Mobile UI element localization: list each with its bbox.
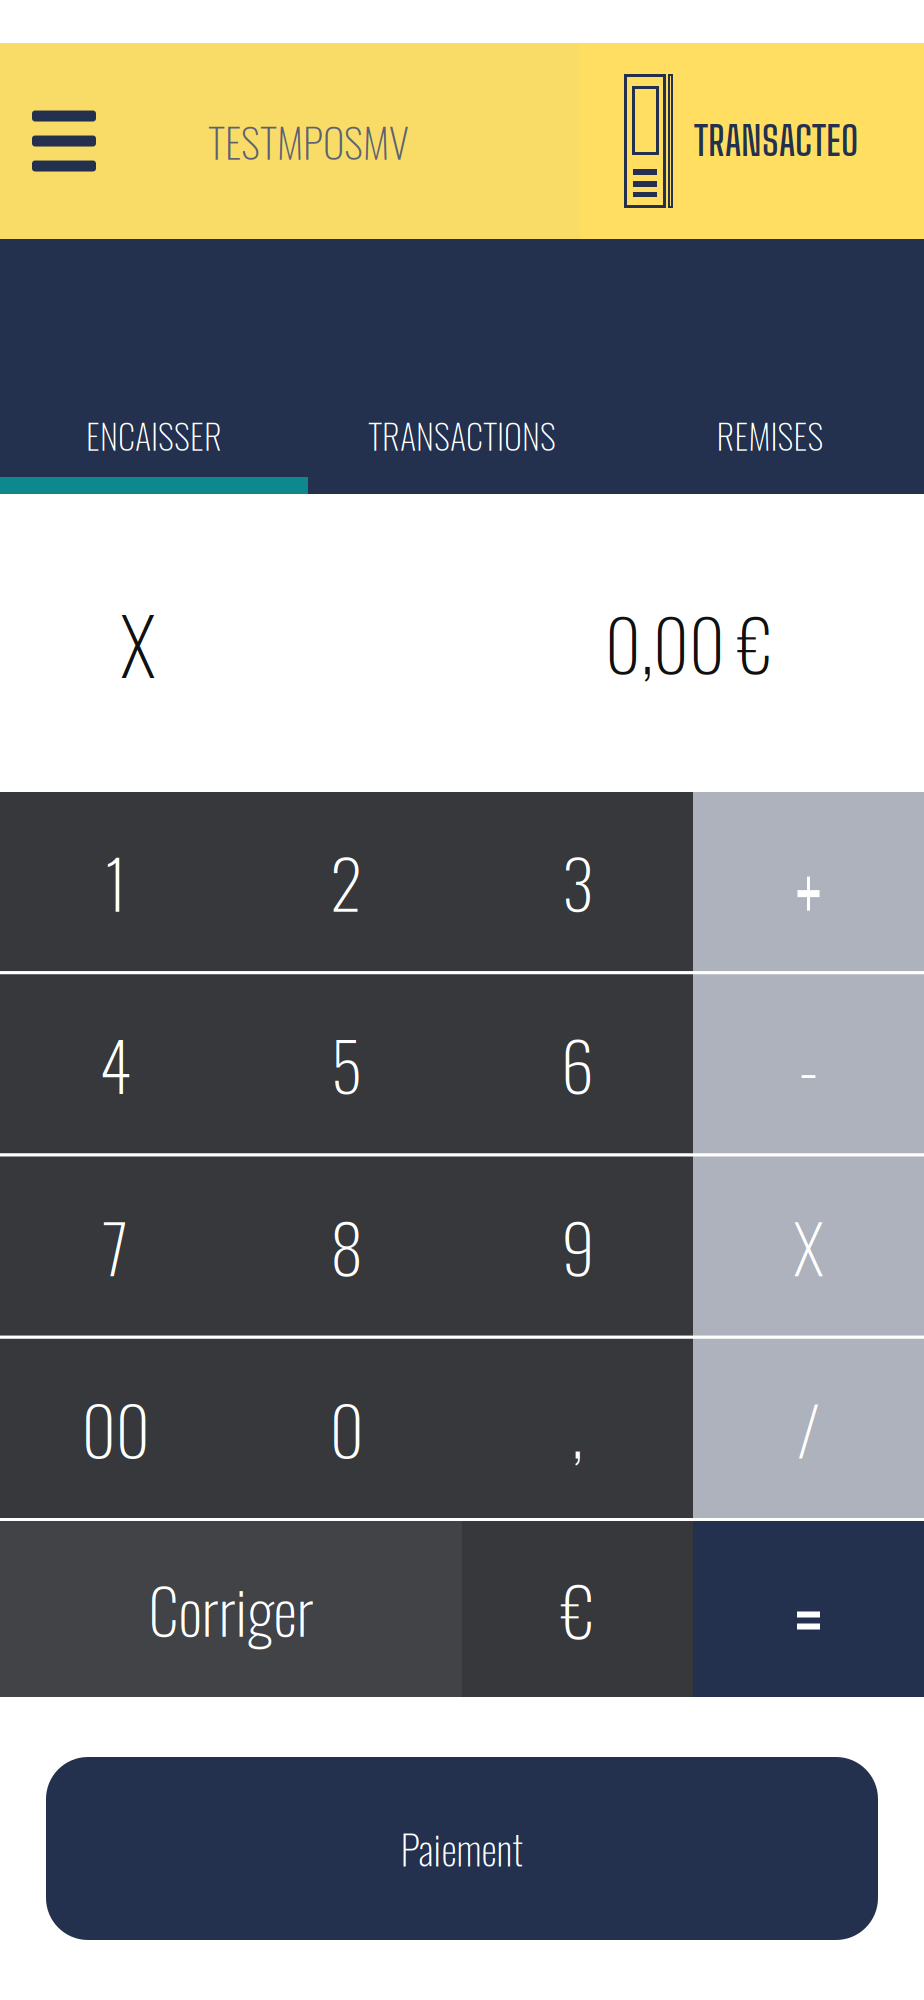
staticText: Paiement (400, 1819, 523, 1878)
button[interactable]: Paiement (46, 1757, 878, 1940)
button[interactable]: 1 (0, 792, 231, 971)
staticText: 00 (81, 1379, 149, 1478)
button[interactable]: 9 (462, 1156, 693, 1336)
staticText: € (561, 1560, 593, 1658)
staticText: 3 (561, 832, 593, 931)
staticText: ENCAISSER (86, 409, 222, 461)
staticText: 0 (329, 1379, 363, 1478)
button[interactable]: Corriger (0, 1521, 462, 1697)
staticText: TRANSACTEO (694, 118, 858, 164)
button[interactable]: REMISES (616, 393, 924, 477)
staticText: 4 (99, 1014, 132, 1113)
button[interactable]: Plus (693, 792, 924, 971)
staticText: 8 (330, 1197, 363, 1295)
button[interactable]: Menu (0, 43, 128, 239)
staticText: Corriger (148, 1564, 313, 1654)
staticText: / (797, 1379, 819, 1478)
staticText: 6 (561, 1014, 594, 1113)
button[interactable]: / (693, 1339, 924, 1518)
staticText: - (799, 1014, 818, 1113)
staticText: 7 (102, 1197, 128, 1295)
button[interactable]: X (693, 1156, 924, 1336)
staticText: 0,00 € (605, 592, 771, 694)
staticText: X (120, 586, 155, 700)
staticText: X (793, 1197, 823, 1295)
staticText: 5 (330, 1014, 362, 1113)
button[interactable]: ENCAISSER (0, 393, 308, 477)
button[interactable]: 8 (231, 1156, 462, 1336)
button[interactable]: 2 (231, 792, 462, 971)
button[interactable]: TRANSACTIONS (308, 393, 616, 477)
staticText: 2 (330, 832, 363, 931)
staticText: REMISES (716, 409, 823, 461)
button[interactable]: 6 (462, 974, 693, 1153)
button[interactable]: 5 (231, 974, 462, 1153)
button[interactable]: 4 (0, 974, 231, 1153)
button[interactable]: 3 (462, 792, 693, 971)
button[interactable]: € (462, 1521, 693, 1697)
button[interactable]: 0 (231, 1339, 462, 1518)
staticText: TRANSACTIONS (368, 409, 556, 461)
staticText: , (571, 1379, 583, 1478)
button[interactable]: 7 (0, 1156, 231, 1336)
button[interactable]: Equals (693, 1521, 924, 1697)
staticText: 9 (561, 1197, 594, 1295)
staticText: TESTMPOSMV (208, 110, 409, 172)
staticText: 1 (104, 832, 126, 931)
button[interactable]: 00 (0, 1339, 231, 1518)
button[interactable]: , (462, 1339, 693, 1518)
button[interactable]: Clear amount (58, 553, 218, 733)
